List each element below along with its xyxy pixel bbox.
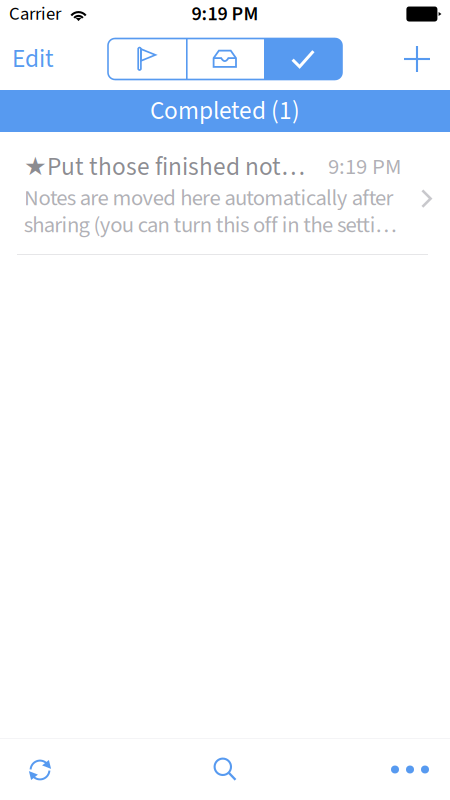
button[interactable]: Search xyxy=(185,739,265,800)
staticText: Notes are moved here automatically after xyxy=(24,182,394,214)
button[interactable]: New note xyxy=(384,28,450,90)
button[interactable]: All notes xyxy=(186,38,264,79)
staticText: 9:19 PM xyxy=(328,151,401,183)
staticText: sharing (you can turn this off in the se… xyxy=(24,209,396,241)
staticText: 9:19 PM xyxy=(191,0,258,28)
button[interactable]: Sync xyxy=(0,739,80,800)
button[interactable]: ★Put those finished not… xyxy=(0,132,450,254)
staticText: Completed (1) xyxy=(150,93,300,129)
button[interactable]: Edit xyxy=(0,28,66,90)
button[interactable]: Completed notes xyxy=(264,38,342,79)
staticText: ★Put those finished not… xyxy=(24,149,305,185)
button[interactable]: Flagged notes xyxy=(108,38,186,79)
staticText: Carrier xyxy=(9,1,61,27)
button[interactable]: More options xyxy=(370,739,450,800)
staticText: Edit xyxy=(12,41,54,77)
